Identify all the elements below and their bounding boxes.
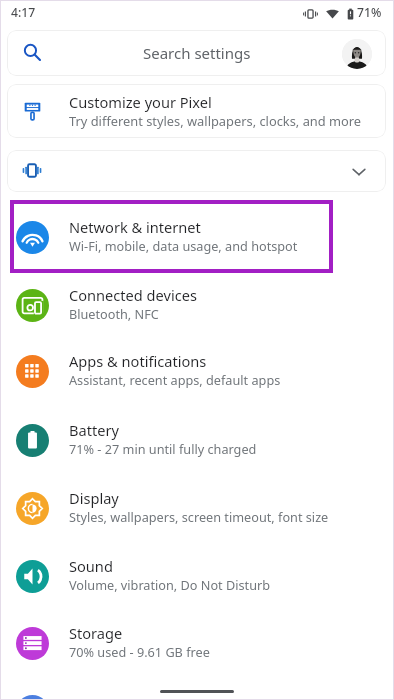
staticText: Apps & notifications [69,351,207,371]
button[interactable]: Storage [0,610,394,676]
staticText: Bluetooth, NFC [69,305,159,322]
staticText: Volume, vibration, Do Not Disturb [69,576,271,593]
staticText: 71% - 27 min until fully charged [69,440,257,457]
staticText: 70% used - 9.61 GB free [69,643,210,660]
staticText: Customize your Pixel [69,92,212,112]
staticText: Wi-Fi, mobile, data usage, and hotspot [69,237,298,254]
other: Search [24,44,41,61]
button[interactable]: Display [0,475,394,541]
button[interactable]: Battery [0,407,394,473]
button[interactable]: Connected devices [0,272,394,338]
button[interactable]: Vibration settings [7,150,386,192]
staticText: Assistant, recent apps, default apps [69,371,281,388]
staticText: 71% [357,4,382,21]
button[interactable]: Apps & notifications [0,338,394,404]
staticText: Search settings [143,43,251,63]
staticText: Styles, wallpapers, screen timeout, font… [69,508,329,525]
button[interactable]: Network & internet [0,204,394,270]
staticText: Sound [69,556,113,576]
button[interactable]: Account [342,39,372,69]
staticText: Privacy [69,696,118,700]
button[interactable]: Sound [0,543,394,609]
staticText: Connected devices [69,285,197,305]
button[interactable]: Search [7,30,386,76]
staticText: 4:17 [11,4,36,21]
staticText: Network & internet [69,217,201,237]
staticText: Display [69,488,119,508]
staticText: Battery [69,420,119,440]
staticText: Try different styles, wallpapers, clocks… [69,112,362,130]
staticText: Storage [69,623,123,643]
button[interactable]: Customize your Pixel [7,84,386,138]
